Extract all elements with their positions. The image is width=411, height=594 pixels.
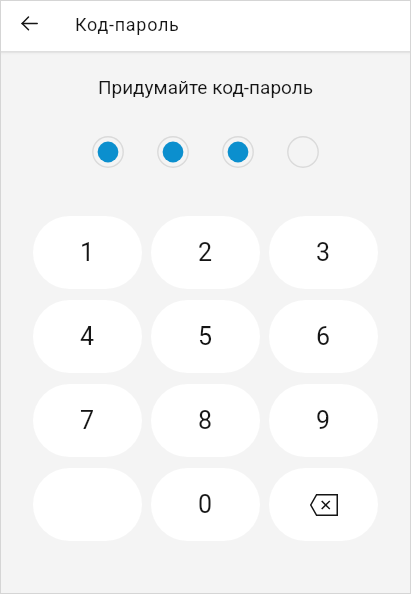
- button[interactable]: 0: [151, 468, 260, 541]
- staticText: 0: [198, 490, 213, 519]
- staticText: 3: [316, 238, 331, 267]
- staticText: 8: [198, 406, 213, 435]
- button[interactable]: 1: [33, 216, 142, 289]
- staticText: Код-пароль: [75, 14, 180, 35]
- button[interactable]: 7: [33, 384, 142, 457]
- staticText: 4: [80, 322, 95, 351]
- button[interactable]: 6: [269, 300, 378, 373]
- staticText: 7: [80, 406, 95, 435]
- button[interactable]: Backspace: [269, 468, 378, 541]
- staticText: 9: [316, 406, 331, 435]
- button[interactable]: 5: [151, 300, 260, 373]
- staticText: 5: [198, 322, 213, 351]
- button[interactable]: 4: [33, 300, 142, 373]
- staticText: 2: [198, 238, 213, 267]
- staticText: 1: [80, 238, 95, 267]
- button[interactable]: 8: [151, 384, 260, 457]
- button[interactable]: 2: [151, 216, 260, 289]
- staticText: 6: [316, 322, 331, 351]
- button[interactable]: Back: [5, 0, 53, 48]
- button[interactable]: 9: [269, 384, 378, 457]
- staticText: Придумайте код-пароль: [0, 76, 411, 98]
- button[interactable]: 3: [269, 216, 378, 289]
